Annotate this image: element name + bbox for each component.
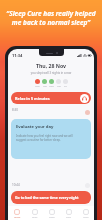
staticText: 10:44	[12, 183, 20, 187]
staticText: Evaluate your day	[16, 124, 54, 130]
staticText: Stats	[66, 216, 72, 219]
staticText: Go to bed the same time every night	[15, 195, 79, 200]
staticText: “Sleep Cure has really helped me back to…	[5, 9, 97, 27]
staticText: 11:34	[12, 53, 23, 58]
button[interactable]: Stats	[60, 206, 77, 220]
staticText: you slept well 3 nights in a row	[8, 71, 94, 75]
staticText: Tue	[43, 85, 47, 88]
staticText: Sleep	[49, 216, 55, 219]
button[interactable]: More	[77, 206, 94, 220]
button[interactable]: Sleep	[43, 206, 60, 220]
staticText: Wed	[49, 85, 54, 88]
staticText: Indicate how you feel right now and we w…	[16, 134, 81, 142]
staticText: Mon	[35, 85, 40, 88]
button[interactable]: Mon	[35, 79, 40, 88]
button[interactable]: Relax in 5 minutes	[11, 92, 91, 104]
button[interactable]: Evaluate your day	[11, 119, 91, 159]
button[interactable]: Go to bed the same time every night	[11, 191, 91, 204]
staticText: Thu	[57, 85, 61, 88]
staticText: 8:30	[12, 108, 18, 112]
staticText: Thu, 28 Nov	[8, 62, 94, 69]
button[interactable]: Tue	[42, 79, 47, 88]
button[interactable]: Thu	[56, 79, 61, 88]
button[interactable]: Diary	[26, 206, 43, 220]
staticText: Home	[14, 216, 21, 219]
button[interactable]: Home	[8, 206, 26, 220]
staticText: Relax in 5 minutes	[15, 96, 50, 101]
staticText: More	[83, 216, 89, 219]
staticText: Diary	[32, 216, 38, 219]
button[interactable]: Wed	[49, 79, 54, 88]
button[interactable]: Fri	[63, 79, 68, 88]
staticText: Fri	[64, 85, 67, 88]
